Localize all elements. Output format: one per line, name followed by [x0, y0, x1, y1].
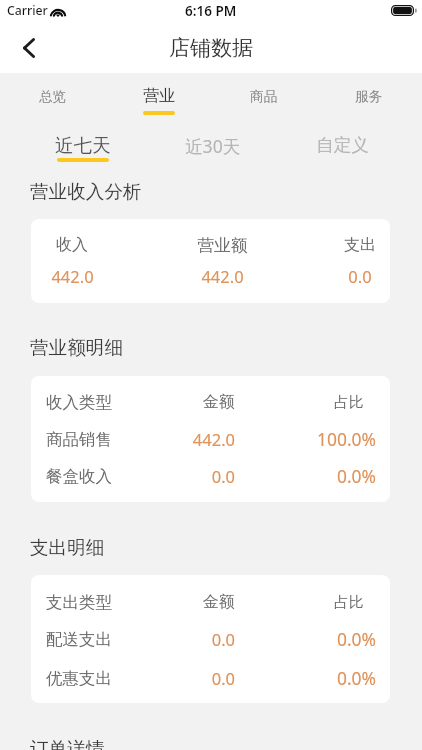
staticText: 占比 [334, 393, 364, 412]
staticText: 营业额明细 [30, 336, 123, 359]
staticText: 近30天 [185, 134, 241, 158]
staticText: 支出明细 [30, 536, 105, 559]
button[interactable]: 商品 [211, 73, 317, 116]
staticText: 服务 [355, 88, 383, 105]
staticText: 占比 [334, 593, 364, 612]
staticText: 442.0 [192, 428, 235, 450]
button[interactable]: 服务 [316, 73, 422, 116]
button[interactable]: 自定义 [277, 120, 407, 167]
button[interactable]: 收入 [31, 219, 390, 303]
staticText: 金额 [203, 392, 235, 412]
button[interactable]: 近七天 [18, 120, 148, 167]
staticText: 总览 [39, 88, 67, 105]
button[interactable]: 近30天 [148, 120, 278, 167]
staticText: 收入 [56, 235, 88, 255]
staticText: 0.0 [211, 667, 235, 689]
staticText: 优惠支出 [46, 668, 112, 689]
staticText: 商品 [250, 88, 278, 105]
staticText: 100.0% [317, 427, 376, 451]
staticText: 0.0 [348, 265, 372, 287]
staticText: 近七天 [55, 134, 111, 157]
button[interactable]: Back [6, 25, 51, 70]
staticText: 商品销售 [46, 429, 112, 450]
staticText: 营业收入分析 [30, 180, 142, 203]
staticText: 店铺数据 [169, 35, 253, 61]
button[interactable]: 收入类型 [31, 376, 390, 502]
staticText: 0.0% [336, 627, 376, 651]
other: Battery full [391, 5, 419, 17]
other: Wi-Fi signal [50, 4, 66, 17]
staticText: 收入类型 [46, 392, 112, 413]
staticText: 0.0 [211, 628, 235, 650]
staticText: 金额 [203, 592, 235, 612]
staticText: 0.0% [336, 464, 376, 488]
staticText: 订单详情 [30, 737, 105, 750]
staticText: 0.0 [211, 465, 235, 487]
staticText: 自定义 [316, 134, 369, 156]
staticText: 支出类型 [46, 592, 112, 613]
staticText: 442.0 [51, 265, 94, 287]
staticText: 营业额 [197, 235, 248, 256]
button[interactable]: 总览 [0, 73, 106, 116]
staticText: 6:16 PM [185, 2, 237, 20]
staticText: 配送支出 [46, 629, 112, 650]
staticText: 442.0 [201, 265, 244, 287]
staticText: 餐盒收入 [46, 466, 112, 487]
button[interactable]: 支出类型 [31, 575, 390, 703]
staticText: 0.0% [336, 666, 376, 690]
staticText: 支出 [344, 235, 376, 255]
staticText: Carrier [7, 2, 48, 19]
staticText: 营业 [143, 86, 175, 106]
button[interactable]: 营业 [106, 73, 212, 116]
